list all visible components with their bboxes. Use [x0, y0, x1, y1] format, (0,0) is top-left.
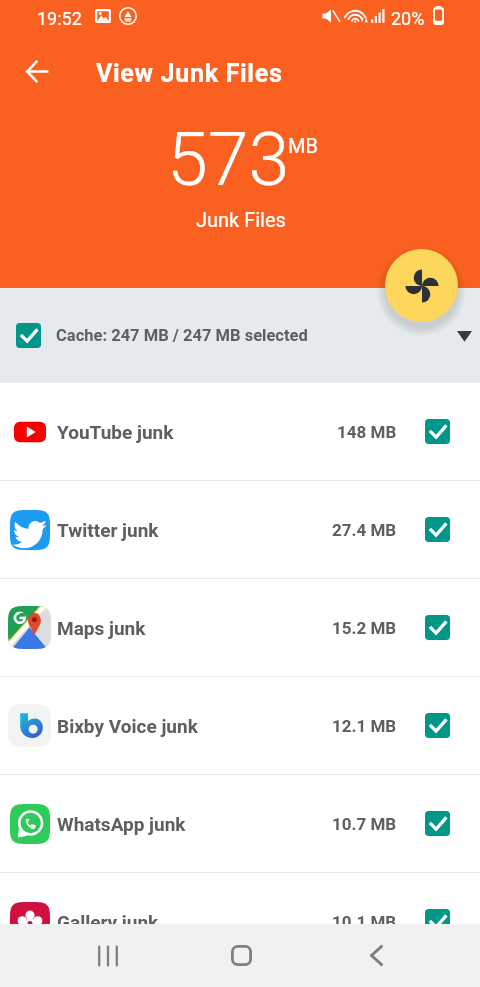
button[interactable]: Cache selected — [16, 323, 41, 348]
staticText: 15.2 MB — [332, 618, 397, 638]
staticText: 573 — [167, 117, 290, 203]
staticText: WhatsApp junk — [57, 813, 186, 835]
staticText: Cache: 247 MB / 247 MB selected — [56, 326, 308, 345]
staticText: Bixby Voice junk — [57, 715, 198, 737]
button[interactable]: Bixby Voice junk — [0, 677, 480, 774]
button[interactable]: Bixby Voice junk selected — [425, 713, 450, 738]
staticText: 10.1 MB — [332, 912, 397, 932]
button[interactable]: Home — [201, 924, 281, 987]
button[interactable]: Cache selected — [0, 288, 480, 383]
staticText: MB — [288, 134, 318, 157]
button[interactable]: WhatsApp junk selected — [425, 811, 450, 836]
staticText: Gallery junk — [57, 911, 159, 933]
staticText: Junk Files — [196, 208, 286, 231]
button[interactable]: YouTube junk selected — [425, 419, 450, 444]
staticText: View Junk Files — [96, 59, 283, 88]
button[interactable]: Recent apps — [68, 924, 148, 987]
staticText: 20% — [391, 8, 425, 29]
button[interactable]: Twitter junk selected — [425, 517, 450, 542]
button[interactable]: Twitter junk — [0, 481, 480, 578]
button[interactable]: Gallery junk — [0, 873, 480, 970]
button[interactable]: Maps junk selected — [425, 615, 450, 640]
staticText: 10.7 MB — [332, 814, 397, 834]
button[interactable]: Back — [7, 41, 67, 101]
staticText: Maps junk — [57, 617, 146, 639]
button[interactable]: Gallery junk selected — [425, 909, 450, 934]
staticText: 148 MB — [337, 422, 397, 442]
button[interactable]: YouTube junk — [0, 383, 480, 480]
staticText: 19:52 — [37, 8, 82, 29]
button[interactable]: Back — [336, 924, 416, 987]
button[interactable]: Maps junk — [0, 579, 480, 676]
staticText: 27.4 MB — [332, 520, 397, 540]
button[interactable]: WhatsApp junk — [0, 775, 480, 872]
staticText: Twitter junk — [57, 519, 159, 541]
staticText: YouTube junk — [57, 421, 174, 443]
button[interactable]: Clean junk files — [385, 249, 458, 322]
button[interactable]: Expand cache list — [444, 316, 480, 356]
staticText: 12.1 MB — [332, 716, 397, 736]
